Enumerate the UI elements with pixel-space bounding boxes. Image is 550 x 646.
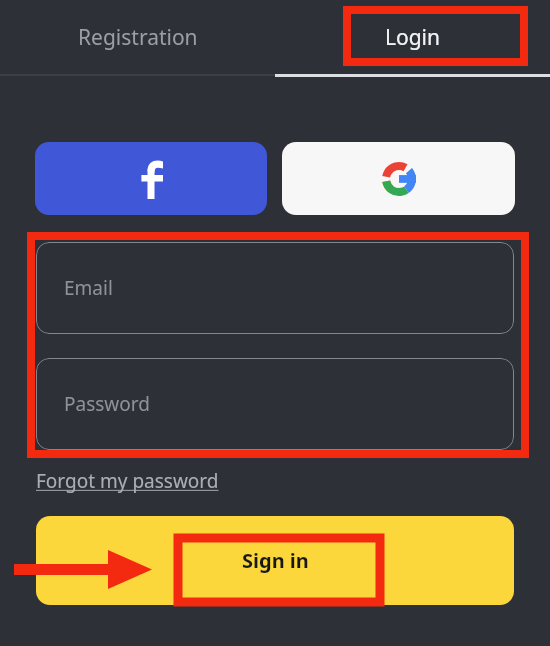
- staticText: Registration: [78, 23, 198, 52]
- button[interactable]: Login: [275, 0, 550, 74]
- button[interactable]: Sign in with Facebook: [35, 142, 267, 215]
- button[interactable]: Forgot my password: [36, 464, 219, 498]
- button[interactable]: Sign in: [36, 516, 514, 605]
- button[interactable]: Password: [36, 358, 514, 450]
- staticText: Email: [64, 275, 113, 301]
- staticText: Login: [385, 23, 441, 52]
- staticText: Sign in: [242, 547, 309, 574]
- staticText: Forgot my password: [36, 468, 219, 494]
- button[interactable]: Email: [36, 242, 514, 334]
- button[interactable]: Registration: [0, 0, 275, 74]
- button[interactable]: Sign in with Google: [282, 142, 515, 215]
- staticText: Password: [64, 391, 150, 417]
